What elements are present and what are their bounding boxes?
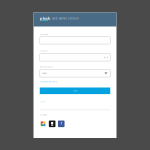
- staticText: Forgot your password?: [40, 81, 58, 83]
- staticText: Or log in with:: [40, 114, 47, 116]
- staticText: plesk: [40, 15, 50, 21]
- staticText: Username: [40, 34, 48, 35]
- button[interactable]: Log in with GitHub: [49, 120, 55, 127]
- button[interactable]: Forgot your password?: [40, 80, 110, 83]
- staticText: web admin edition: [52, 17, 79, 20]
- staticText: f: [61, 122, 62, 125]
- staticText: Interface language: [40, 66, 53, 68]
- button[interactable]: Log in with Google: [40, 120, 46, 127]
- button[interactable]: Log in: [40, 87, 110, 94]
- staticText: Password: [40, 50, 48, 52]
- staticText: Default: [42, 72, 46, 74]
- button[interactable]: Cookies: [40, 100, 110, 103]
- button[interactable]: Log in with Facebook: [58, 120, 65, 127]
- staticText: Cookies: [40, 101, 46, 103]
- staticText: Log in: [73, 90, 77, 92]
